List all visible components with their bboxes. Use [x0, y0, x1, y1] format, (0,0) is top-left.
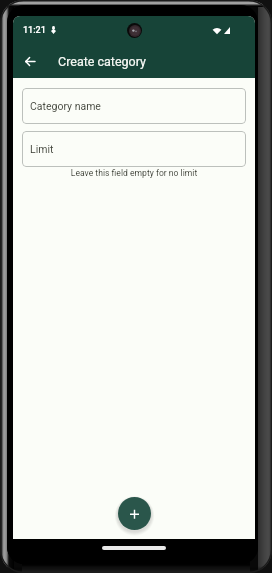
- staticText: Create category: [58, 54, 146, 69]
- staticText: Leave this field empty for no limit: [22, 168, 246, 178]
- button[interactable]: Category name: [22, 88, 246, 124]
- button[interactable]: Add: [118, 497, 151, 530]
- button[interactable]: Limit: [22, 131, 246, 167]
- button[interactable]: Back: [13, 44, 47, 78]
- staticText: Category name: [30, 100, 101, 112]
- staticText: Limit: [30, 143, 54, 155]
- staticText: 11:21: [23, 25, 46, 36]
